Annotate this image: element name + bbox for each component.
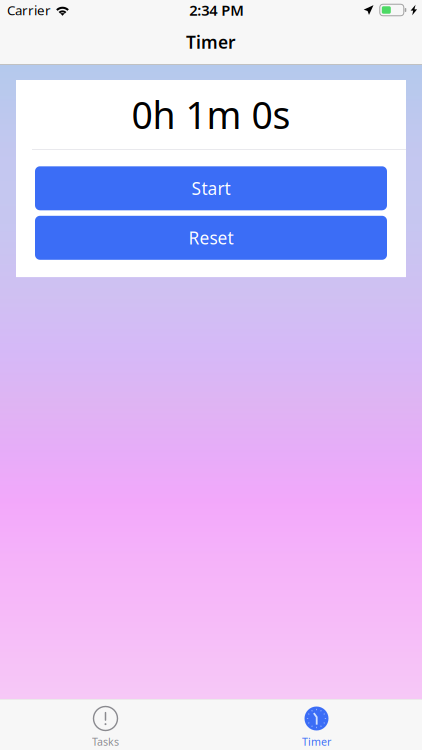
button[interactable]: Reset [35, 216, 387, 260]
button[interactable]: Timer [211, 699, 422, 750]
staticText: Timer [186, 30, 236, 53]
staticText: 0h 1m 0s [131, 90, 290, 139]
staticText: Carrier [7, 1, 51, 19]
staticText: Timer [302, 734, 331, 749]
button[interactable]: Tasks [0, 699, 211, 750]
button[interactable]: Start [35, 166, 387, 210]
staticText: 2:34 PM [189, 0, 244, 20]
staticText: Reset [188, 226, 233, 249]
staticText: Tasks [92, 734, 119, 749]
staticText: Start [191, 177, 230, 200]
